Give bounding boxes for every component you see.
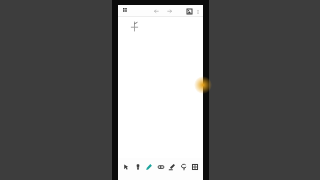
button[interactable]: Undo [152,7,160,15]
button[interactable]: Eraser [156,162,166,172]
button[interactable]: Select [121,162,131,172]
button[interactable]: Lasso [179,162,189,172]
button[interactable]: Insert image [185,7,193,15]
button[interactable]: Menu [121,6,130,15]
button[interactable]: Layers [190,162,200,172]
button[interactable]: Colour picker [198,79,203,91]
button[interactable]: More options [194,8,201,15]
button[interactable]: Pen [144,162,154,172]
button[interactable]: Brush [133,162,143,172]
button[interactable]: Marker [167,162,177,172]
button[interactable]: Redo [165,7,173,15]
